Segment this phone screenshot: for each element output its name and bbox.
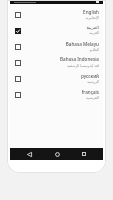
- button[interactable]: Bahasa Indonesia: [10, 54, 103, 70]
- button[interactable]: Recent apps: [75, 148, 93, 160]
- button[interactable]: العربية: [10, 22, 103, 38]
- button[interactable]: English: [10, 6, 103, 22]
- staticText: الروسية: [87, 80, 99, 84]
- staticText: Bahasa Melayu: [65, 41, 99, 47]
- button[interactable]: Back: [20, 148, 38, 160]
- staticText: français: [81, 89, 99, 95]
- staticText: الفرنسية: [85, 96, 99, 100]
- staticText: العربية: [89, 31, 99, 35]
- button[interactable]: français: [10, 86, 103, 102]
- staticText: English: [83, 9, 99, 15]
- button[interactable]: русский: [10, 70, 103, 86]
- staticText: العربية: [86, 25, 99, 30]
- staticText: Bahasa Indonesia: [60, 56, 99, 62]
- staticText: русский: [81, 73, 99, 79]
- staticText: لغة إندونيسيا الرسمية: [67, 63, 99, 68]
- staticText: الإنجليزية: [85, 16, 99, 20]
- button[interactable]: Bahasa Melayu: [10, 38, 103, 54]
- staticText: الملايو: [89, 48, 99, 52]
- button[interactable]: Home: [48, 148, 66, 160]
